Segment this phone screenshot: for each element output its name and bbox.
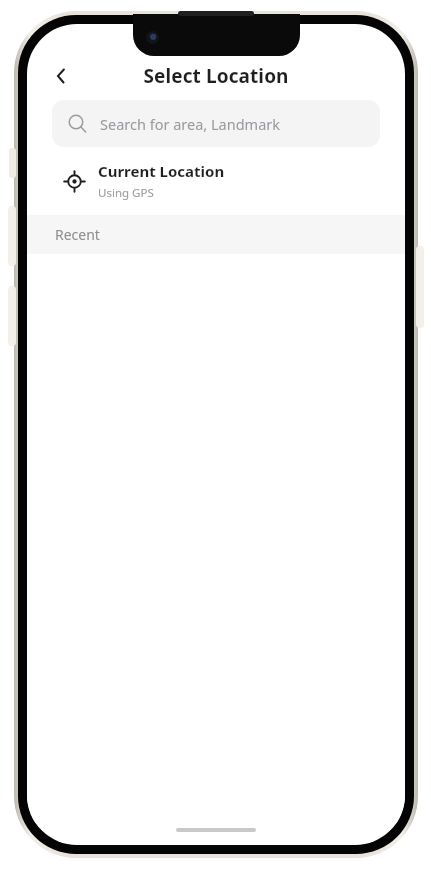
staticText: Using GPS bbox=[98, 185, 154, 201]
button[interactable]: Back bbox=[39, 54, 83, 98]
staticText: Select Location bbox=[143, 63, 289, 89]
staticText: Recent bbox=[55, 225, 100, 244]
staticText: Current Location bbox=[98, 161, 225, 181]
staticText: Search for area, Landmark bbox=[100, 114, 281, 134]
button[interactable]: Current Location bbox=[27, 147, 405, 215]
button[interactable]: Search for area, Landmark bbox=[52, 100, 380, 147]
